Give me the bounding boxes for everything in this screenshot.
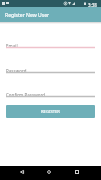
button[interactable]: REGISTER (6, 105, 95, 118)
staticText: Confirm Password (6, 92, 45, 98)
staticText: REGISTER (41, 109, 60, 115)
button[interactable]: Recent apps (69, 167, 85, 179)
staticText: Register New User (5, 12, 50, 19)
button[interactable]: Confirm Password (6, 89, 95, 98)
button[interactable]: Password (6, 65, 95, 74)
button[interactable]: Home (41, 167, 57, 179)
staticText: 3:38 (88, 2, 97, 8)
button[interactable]: Email (6, 40, 95, 49)
button[interactable]: Back (14, 167, 30, 179)
staticText: Email (6, 43, 18, 49)
staticText: Password (6, 68, 27, 74)
